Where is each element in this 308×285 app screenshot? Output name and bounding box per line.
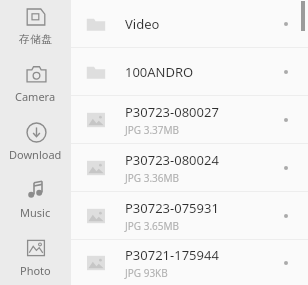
staticText: 存储盘 bbox=[19, 32, 52, 46]
staticText: P30721-175944 bbox=[125, 246, 219, 264]
staticText: Camera bbox=[15, 89, 56, 104]
button[interactable]: P30723-080024 bbox=[71, 144, 308, 191]
button[interactable]: Music bbox=[0, 162, 71, 220]
other: Photo bbox=[26, 238, 46, 258]
button[interactable]: 100ANDRO bbox=[71, 48, 308, 95]
other: Download bbox=[26, 122, 47, 143]
staticText: P30723-080024 bbox=[125, 151, 219, 169]
staticText: P30723-075931 bbox=[125, 199, 219, 217]
button[interactable]: P30723-075931 bbox=[71, 192, 308, 239]
other: More options bbox=[274, 12, 298, 36]
staticText: 100ANDRO bbox=[125, 63, 194, 81]
staticText: Music bbox=[20, 205, 51, 220]
staticText: Video bbox=[125, 15, 160, 33]
button[interactable]: Camera bbox=[0, 46, 71, 104]
other: More options bbox=[274, 156, 298, 180]
button[interactable]: Download bbox=[0, 104, 71, 162]
button[interactable]: Storage bbox=[0, 0, 71, 46]
button[interactable]: Video bbox=[71, 0, 308, 47]
staticText: JPG 3.65MB bbox=[125, 219, 180, 233]
other: Storage bbox=[26, 7, 46, 27]
other: Camera bbox=[26, 64, 47, 85]
staticText: Photo bbox=[20, 263, 51, 278]
other: Music bbox=[26, 180, 46, 200]
other: More options bbox=[274, 251, 298, 275]
button[interactable]: P30721-175944 bbox=[71, 240, 308, 285]
staticText: Download bbox=[9, 147, 62, 162]
other: More options bbox=[274, 108, 298, 132]
other: More options bbox=[274, 60, 298, 84]
staticText: JPG 3.37MB bbox=[125, 123, 180, 137]
staticText: JPG 3.36MB bbox=[125, 171, 180, 185]
button[interactable]: Photo bbox=[0, 220, 71, 278]
button[interactable]: P30723-080027 bbox=[71, 96, 308, 143]
other: More options bbox=[274, 204, 298, 228]
staticText: JPG 93KB bbox=[125, 266, 168, 280]
staticText: P30723-080027 bbox=[125, 103, 219, 121]
